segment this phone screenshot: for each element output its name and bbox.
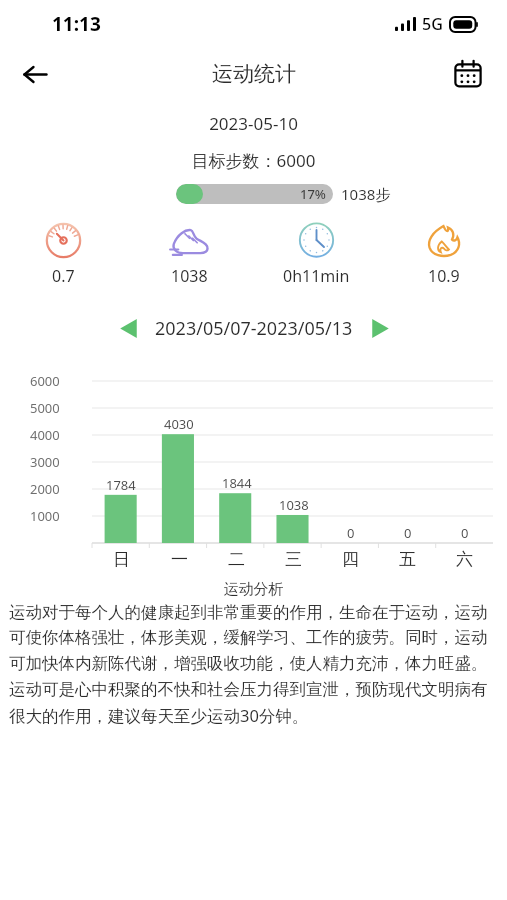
staticText: 10.9: [428, 265, 460, 287]
button[interactable]: 0h11min: [253, 218, 380, 287]
staticText: 0h11min: [283, 265, 350, 287]
staticText: 2023-05-10: [0, 112, 507, 135]
button[interactable]: 10.9: [380, 218, 507, 287]
staticText: 4000: [30, 426, 60, 444]
staticText: 四: [342, 549, 359, 570]
staticText: 1000: [30, 507, 60, 525]
staticText: 运动分析: [0, 580, 507, 599]
button[interactable]: 0.7: [0, 218, 126, 287]
button[interactable]: Previous week: [109, 309, 147, 347]
staticText: 5000: [30, 399, 60, 417]
staticText: 六: [456, 549, 473, 570]
staticText: 0.7: [52, 265, 75, 287]
button[interactable]: 17%: [176, 184, 333, 204]
staticText: 1038步: [341, 184, 391, 204]
button[interactable]: Next week: [361, 309, 399, 347]
button[interactable]: Calendar: [445, 51, 491, 97]
staticText: 1784: [106, 476, 136, 494]
staticText: 目标步数：6000: [0, 149, 507, 172]
staticText: 4030: [164, 415, 194, 433]
staticText: 5G: [422, 13, 443, 35]
staticText: 2000: [30, 480, 60, 498]
staticText: 1844: [222, 474, 252, 492]
staticText: 6000: [30, 372, 60, 390]
staticText: 1038: [279, 496, 309, 514]
staticText: 0: [404, 524, 412, 542]
staticText: 日: [113, 549, 130, 570]
staticText: 五: [399, 549, 416, 570]
staticText: 3000: [30, 453, 60, 471]
staticText: 2023/05/07-2023/05/13: [155, 316, 353, 341]
staticText: 运动统计: [212, 61, 296, 87]
staticText: 0: [461, 524, 469, 542]
staticText: 三: [285, 549, 302, 570]
staticText: 17%: [300, 185, 326, 203]
button[interactable]: 1038: [126, 218, 253, 287]
staticText: 二: [228, 549, 245, 570]
staticText: 运动对于每个人的健康起到非常重要的作用，生命在于运动，运动可使你体格强壮，体形美…: [9, 602, 498, 727]
staticText: 一: [171, 549, 188, 570]
staticText: 1038: [171, 265, 208, 287]
button[interactable]: Back: [12, 51, 58, 97]
staticText: 11:13: [52, 11, 101, 37]
staticText: 0: [347, 524, 355, 542]
